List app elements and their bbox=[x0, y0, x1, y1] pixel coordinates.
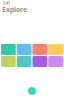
staticText: Explore bbox=[2, 5, 27, 14]
staticText: 9:41 bbox=[3, 0, 10, 6]
